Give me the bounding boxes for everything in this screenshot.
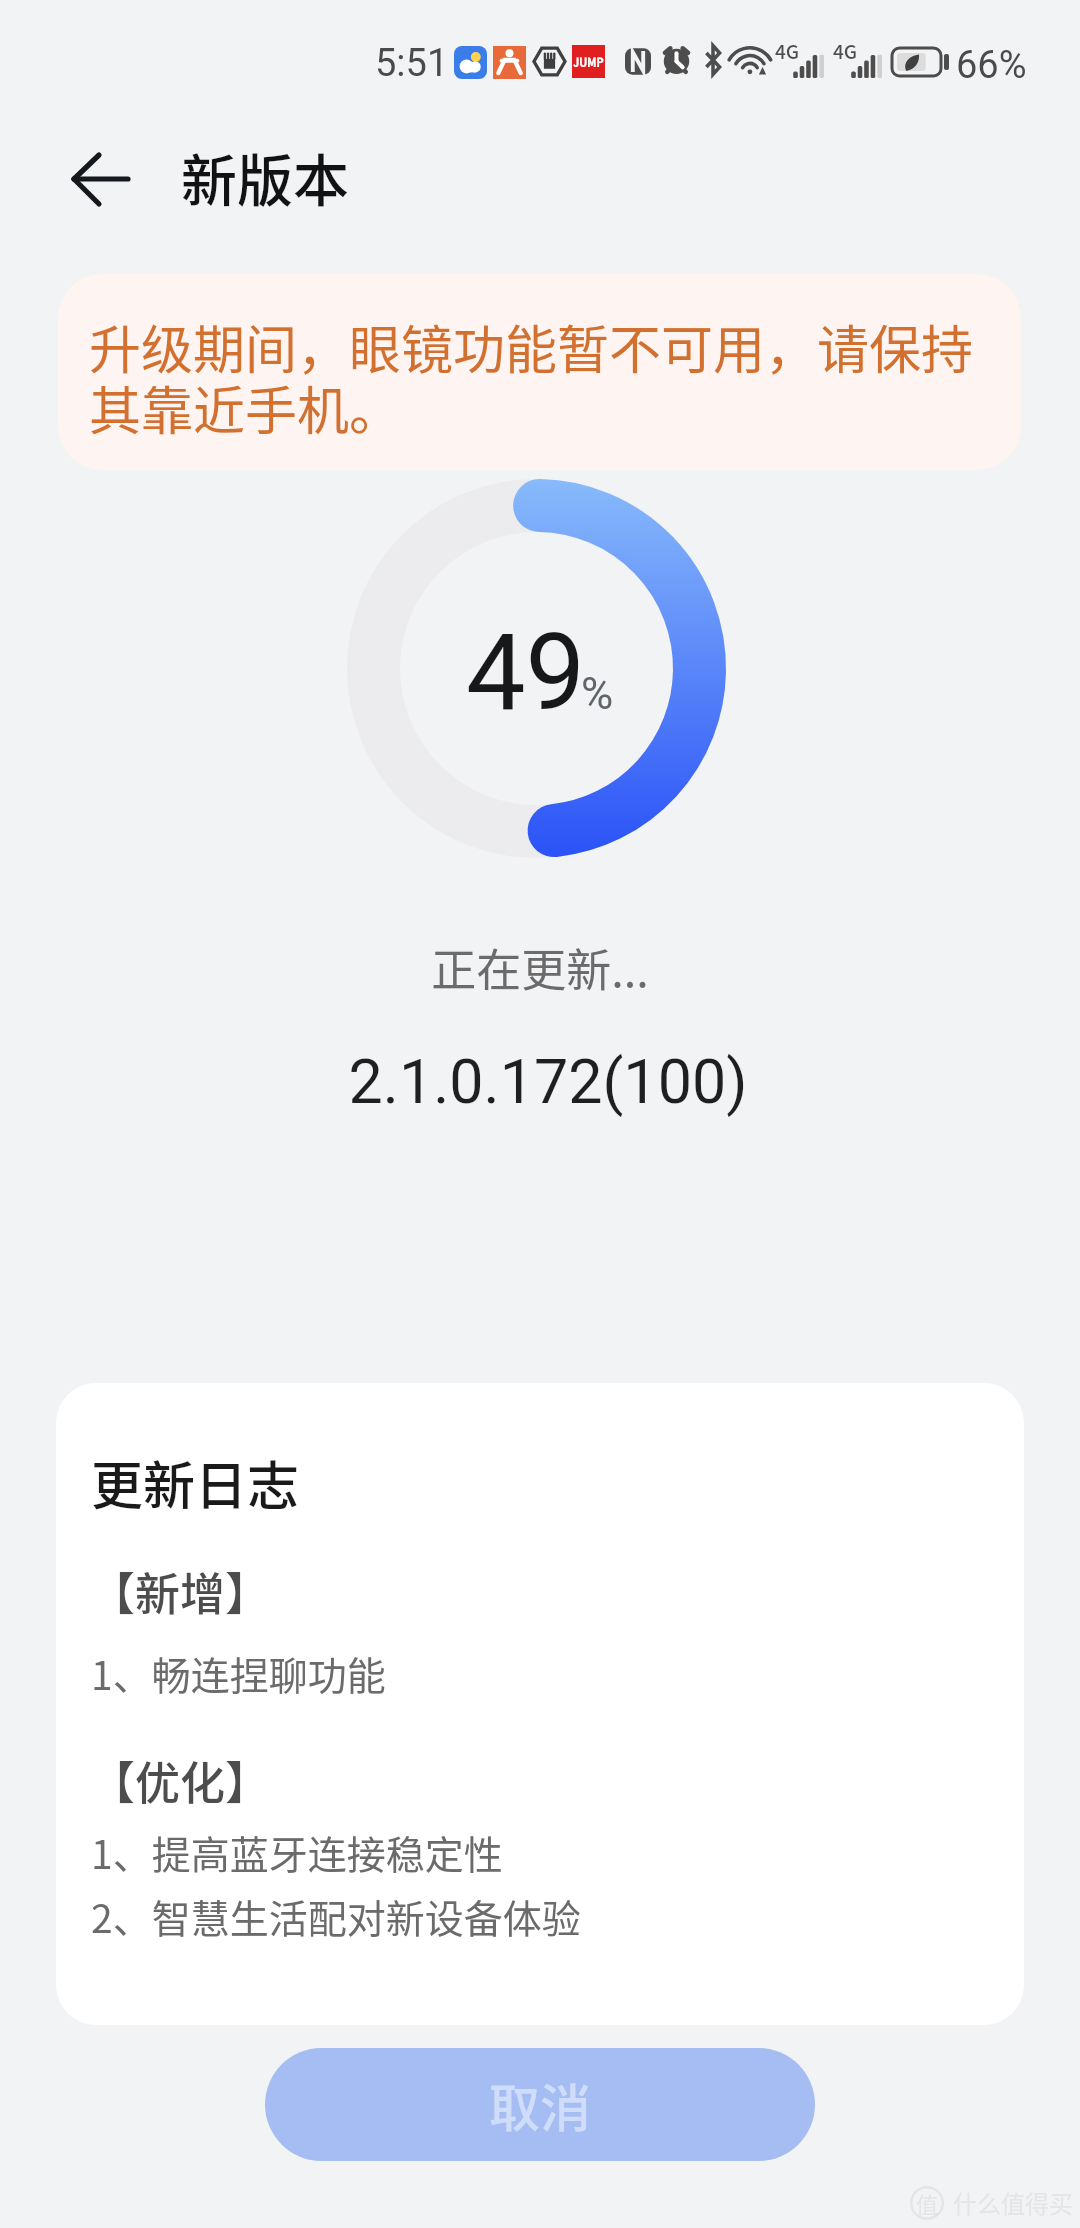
staticText: 值: [916, 2187, 939, 2219]
staticText: 更新日志: [91, 1445, 300, 1520]
staticText: 4G: [833, 37, 858, 65]
staticText: JUMP: [573, 54, 604, 70]
staticText: 【新增】: [90, 1559, 271, 1624]
staticText: 1、畅连捏聊功能: [91, 1645, 386, 1701]
staticText: 66%: [956, 43, 1027, 88]
staticText: 升级期间，眼镜功能暂不可用，请保持其靠近手机。: [89, 309, 994, 445]
staticText: 2.1.0.172(100): [8, 1046, 1080, 1117]
staticText: 正在更新...: [0, 935, 1080, 1000]
staticText: 1、提高蓝牙连接稳定性: [91, 1824, 503, 1880]
staticText: 取消: [489, 2068, 592, 2142]
button[interactable]: 取消: [265, 2048, 815, 2161]
button[interactable]: Back: [45, 123, 157, 235]
staticText: 2、智慧生活配对新设备体验: [91, 1888, 581, 1944]
staticText: 【优化】: [90, 1748, 271, 1813]
staticText: 49: [466, 611, 586, 735]
staticText: 新版本: [181, 136, 349, 217]
staticText: %: [581, 668, 614, 720]
staticText: 4G: [775, 37, 800, 65]
staticText: 5:51: [375, 41, 449, 86]
staticText: 什么值得买: [953, 2185, 1073, 2220]
